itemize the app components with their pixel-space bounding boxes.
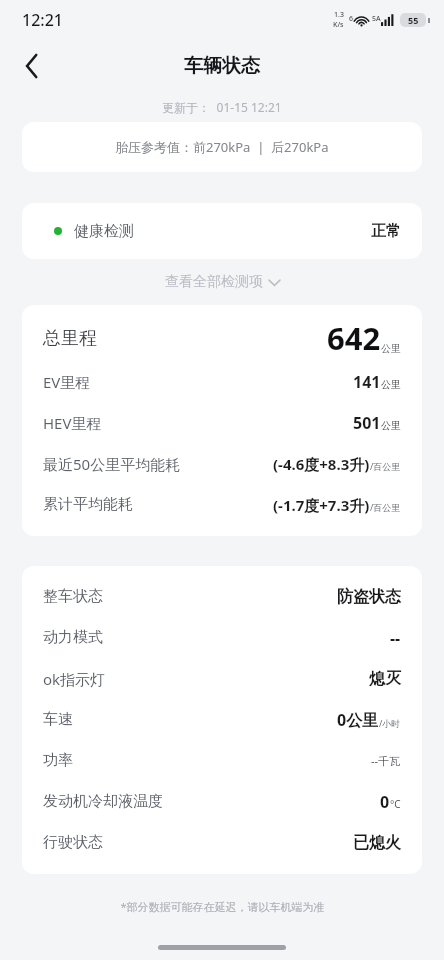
staticText: 车辆状态 bbox=[184, 54, 260, 78]
staticText: 642 bbox=[327, 317, 381, 359]
staticText: EV里程 bbox=[43, 372, 91, 392]
staticText: 公里 bbox=[381, 419, 401, 432]
staticText: 6 bbox=[349, 14, 354, 24]
staticText: 更新于： 01-15 12:21 bbox=[162, 99, 282, 115]
staticText: 发动机冷却液温度 bbox=[43, 792, 163, 811]
button[interactable]: Back bbox=[10, 44, 54, 88]
staticText: 健康检测 bbox=[74, 222, 134, 241]
button[interactable]: 健康检测 bbox=[22, 203, 422, 259]
staticText: 正常 bbox=[371, 222, 401, 241]
staticText: 车速 bbox=[43, 710, 73, 729]
staticText: 查看全部检测项 bbox=[165, 273, 263, 291]
staticText: ok指示灯 bbox=[43, 669, 106, 689]
staticText: 501 bbox=[353, 412, 381, 434]
staticText: (-1.7度+7.3升) bbox=[273, 495, 370, 515]
staticText: 整车状态 bbox=[43, 587, 103, 606]
staticText: 防盗状态 bbox=[337, 587, 401, 607]
staticText: 公里 bbox=[381, 378, 401, 391]
staticText: 总里程 bbox=[43, 327, 97, 350]
button[interactable]: 查看全部检测项 bbox=[157, 267, 288, 297]
staticText: 12:21 bbox=[22, 9, 63, 31]
staticText: 1.3 bbox=[334, 10, 344, 20]
staticText: /百公里 bbox=[370, 460, 401, 472]
staticText: 141 bbox=[353, 371, 381, 393]
staticText: /百公里 bbox=[370, 501, 401, 513]
staticText: 最近50公里平均能耗 bbox=[43, 454, 181, 474]
button[interactable]: 胎压参考值：前270kPa | 后270kPa bbox=[22, 122, 422, 172]
staticText: 公里 bbox=[381, 342, 401, 355]
staticText: 0 bbox=[380, 791, 390, 813]
staticText: 累计平均能耗 bbox=[43, 495, 133, 514]
staticText: *部分数据可能存在延迟，请以车机端为准 bbox=[120, 899, 325, 914]
staticText: --千瓦 bbox=[371, 753, 401, 768]
staticText: 胎压参考值：前270kPa | 后270kPa bbox=[115, 138, 329, 156]
staticText: 熄灭 bbox=[369, 669, 401, 689]
staticText: 0公里 bbox=[337, 709, 379, 731]
staticText: 动力模式 bbox=[43, 628, 103, 647]
staticText: 已熄火 bbox=[353, 833, 401, 853]
staticText: 行驶状态 bbox=[43, 833, 103, 852]
staticText: K/s bbox=[333, 20, 344, 30]
staticText: 功率 bbox=[43, 751, 73, 770]
staticText: -- bbox=[390, 627, 401, 649]
staticText: °C bbox=[390, 797, 401, 811]
staticText: 55 bbox=[408, 14, 419, 26]
staticText: 5A bbox=[372, 14, 381, 24]
staticText: (-4.6度+8.3升) bbox=[273, 454, 370, 474]
staticText: HEV里程 bbox=[43, 413, 102, 433]
staticText: /小时 bbox=[379, 717, 401, 729]
